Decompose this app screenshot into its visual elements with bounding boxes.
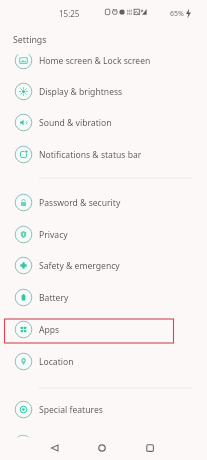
staticText: 65%: [170, 9, 184, 19]
staticText: Sound & vibration: [39, 117, 112, 129]
button[interactable]: Home: [88, 436, 116, 460]
button[interactable]: Privacy: [0, 219, 207, 250]
staticText: Display & brightness: [39, 86, 123, 98]
staticText: Home screen & Lock screen: [39, 55, 151, 67]
button[interactable]: Back: [41, 436, 69, 460]
staticText: Password & security: [39, 197, 121, 209]
button[interactable]: Special features: [0, 394, 207, 425]
button[interactable]: Sound & vibration: [0, 107, 207, 138]
staticText: Apps: [39, 324, 60, 336]
button[interactable]: Display & brightness: [0, 76, 207, 107]
button[interactable]: Password & security: [0, 187, 207, 218]
button[interactable]: Location: [0, 346, 207, 377]
staticText: Safety & emergency: [39, 260, 120, 272]
staticText: Battery: [39, 292, 69, 304]
button[interactable]: Apps: [0, 314, 207, 345]
staticText: Location: [39, 356, 74, 368]
button[interactable]: Recents: [136, 436, 164, 460]
staticText: 15:25: [59, 8, 80, 19]
staticText: Special features: [39, 404, 103, 416]
button[interactable]: Home screen & Lock screen: [0, 45, 207, 76]
button[interactable]: Safety & emergency: [0, 250, 207, 281]
button[interactable]: Battery: [0, 282, 207, 313]
staticText: Settings: [13, 34, 47, 46]
button[interactable]: Notifications & status bar: [0, 139, 207, 170]
staticText: Notifications & status bar: [39, 149, 142, 161]
staticText: Privacy: [39, 229, 68, 241]
